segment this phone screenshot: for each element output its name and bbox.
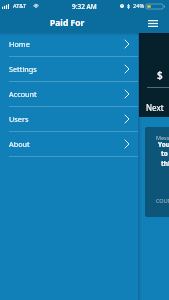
staticText: AT&T: [13, 2, 27, 10]
button[interactable]: Users: [0, 107, 138, 132]
staticText: Users: [9, 114, 29, 124]
button[interactable]: Account: [0, 82, 138, 107]
staticText: Paid For: [50, 17, 85, 29]
button[interactable]: About: [0, 132, 138, 157]
staticText: this feature: [161, 159, 169, 168]
staticText: 24%: [133, 2, 145, 10]
staticText: Home: [9, 39, 30, 49]
staticText: Settings: [9, 64, 37, 74]
staticText: Next: [146, 102, 164, 113]
button[interactable]: Settings: [0, 57, 138, 82]
staticText: Account: [9, 89, 37, 99]
staticText: You must log in first: [158, 140, 169, 149]
staticText: About: [9, 139, 30, 149]
button[interactable]: Home: [0, 32, 138, 57]
staticText: COUNT: [156, 197, 169, 204]
staticText: Message: [156, 134, 169, 141]
staticText: 9:32 AM: [72, 2, 97, 11]
button[interactable]: Menu: [144, 14, 162, 32]
staticText: to be able: [161, 149, 169, 158]
staticText: $: [157, 68, 163, 82]
